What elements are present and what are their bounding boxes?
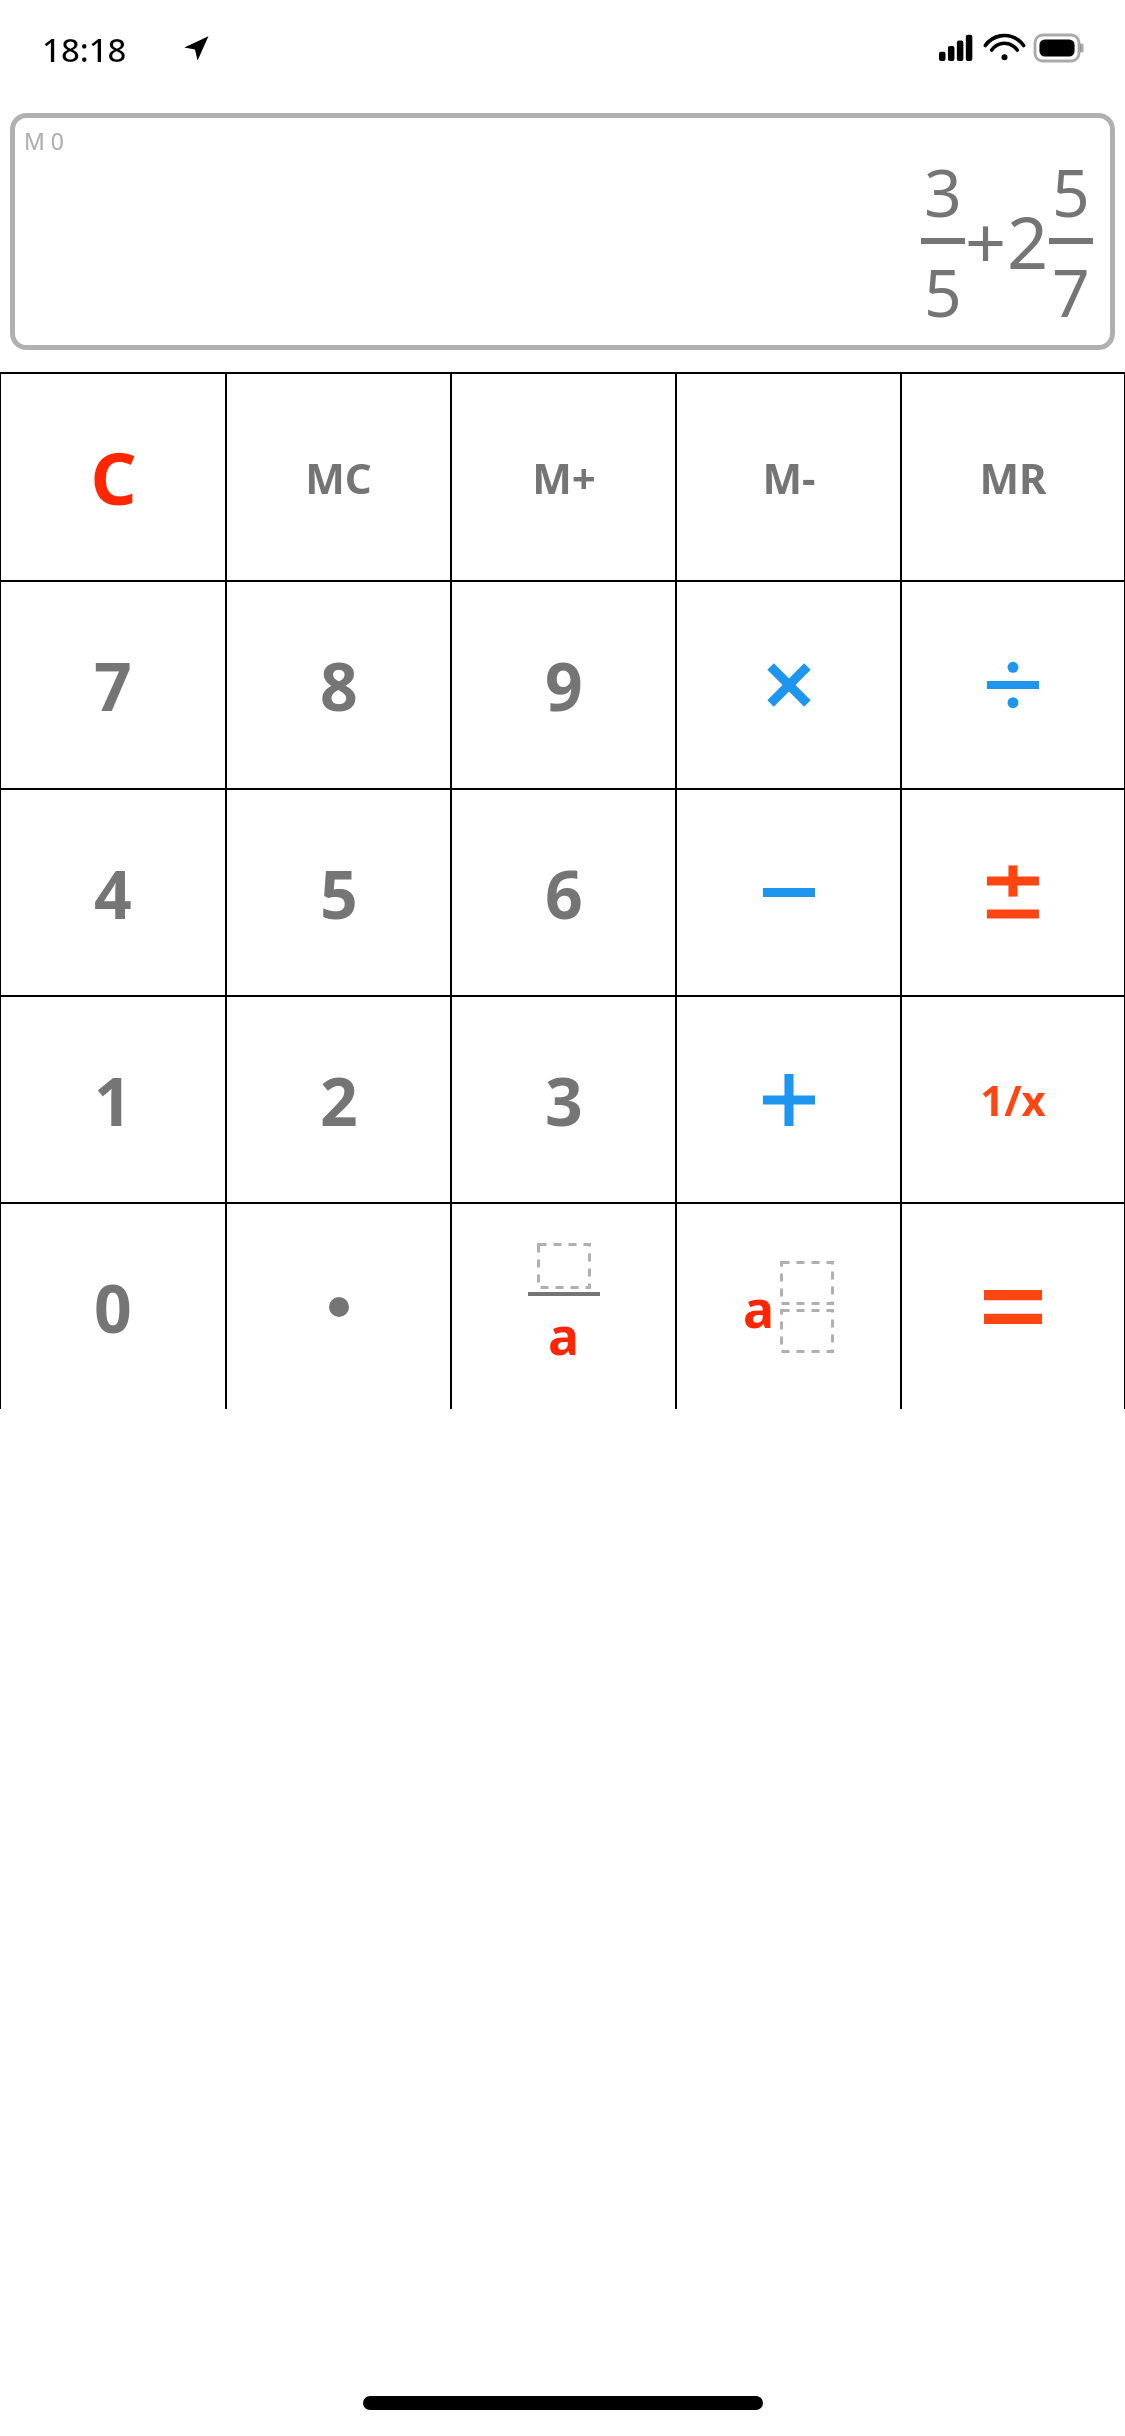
staticText: 1 xyxy=(94,1055,132,1145)
button[interactable]: 8 xyxy=(227,582,450,788)
staticText: 9 xyxy=(545,640,583,730)
button[interactable]: M- xyxy=(677,374,900,580)
button[interactable]: MR xyxy=(902,374,1124,580)
button[interactable]: Fraction template xyxy=(452,1204,675,1409)
button[interactable]: 1 xyxy=(1,997,225,1202)
staticText: 3 xyxy=(924,146,962,236)
staticText: 7 xyxy=(94,640,132,730)
staticText: 6 xyxy=(545,848,583,938)
staticText: M- xyxy=(762,449,816,506)
staticText: 7 xyxy=(1052,246,1090,336)
staticText: MR xyxy=(979,449,1047,506)
button[interactable]: C xyxy=(1,374,225,580)
button[interactable]: Plus minus xyxy=(902,790,1124,995)
staticText: M+ xyxy=(532,449,596,506)
button[interactable]: MC xyxy=(227,374,450,580)
button[interactable] xyxy=(227,1204,450,1409)
button[interactable]: Mixed number template xyxy=(677,1204,900,1409)
staticText: a xyxy=(548,1299,580,1370)
staticText: 5 xyxy=(924,246,962,336)
button[interactable]: Divide xyxy=(902,582,1124,788)
staticText: 3 xyxy=(545,1055,583,1145)
button[interactable]: 7 xyxy=(1,582,225,788)
button[interactable]: 5 xyxy=(227,790,450,995)
staticText: 5 xyxy=(320,848,358,938)
staticText: 1/x xyxy=(980,1071,1046,1128)
staticText: 2 xyxy=(320,1055,358,1145)
staticText: 2 xyxy=(1007,192,1049,290)
button[interactable]: 1/x xyxy=(902,997,1124,1202)
staticText: 4 xyxy=(94,848,132,938)
staticText: M 0 xyxy=(24,125,64,156)
button[interactable]: M 0 xyxy=(10,113,1115,350)
button[interactable]: Plus xyxy=(677,997,900,1202)
staticText: 5 xyxy=(1052,146,1090,236)
button[interactable]: 9 xyxy=(452,582,675,788)
staticText: a xyxy=(743,1272,775,1343)
button[interactable]: 6 xyxy=(452,790,675,995)
staticText: + xyxy=(965,192,1007,290)
staticText: 0 xyxy=(94,1262,132,1352)
button[interactable]: 3 xyxy=(452,997,675,1202)
button[interactable]: Minus xyxy=(677,790,900,995)
button[interactable]: Equals xyxy=(902,1204,1124,1409)
staticText: MC xyxy=(305,449,372,506)
button[interactable]: M+ xyxy=(452,374,675,580)
button[interactable]: 4 xyxy=(1,790,225,995)
staticText: C xyxy=(90,428,137,526)
staticText: 18:18 xyxy=(42,27,127,72)
button[interactable]: 2 xyxy=(227,997,450,1202)
staticText: 8 xyxy=(320,640,358,730)
button[interactable]: 0 xyxy=(1,1204,225,1409)
button[interactable]: Multiply xyxy=(677,582,900,788)
